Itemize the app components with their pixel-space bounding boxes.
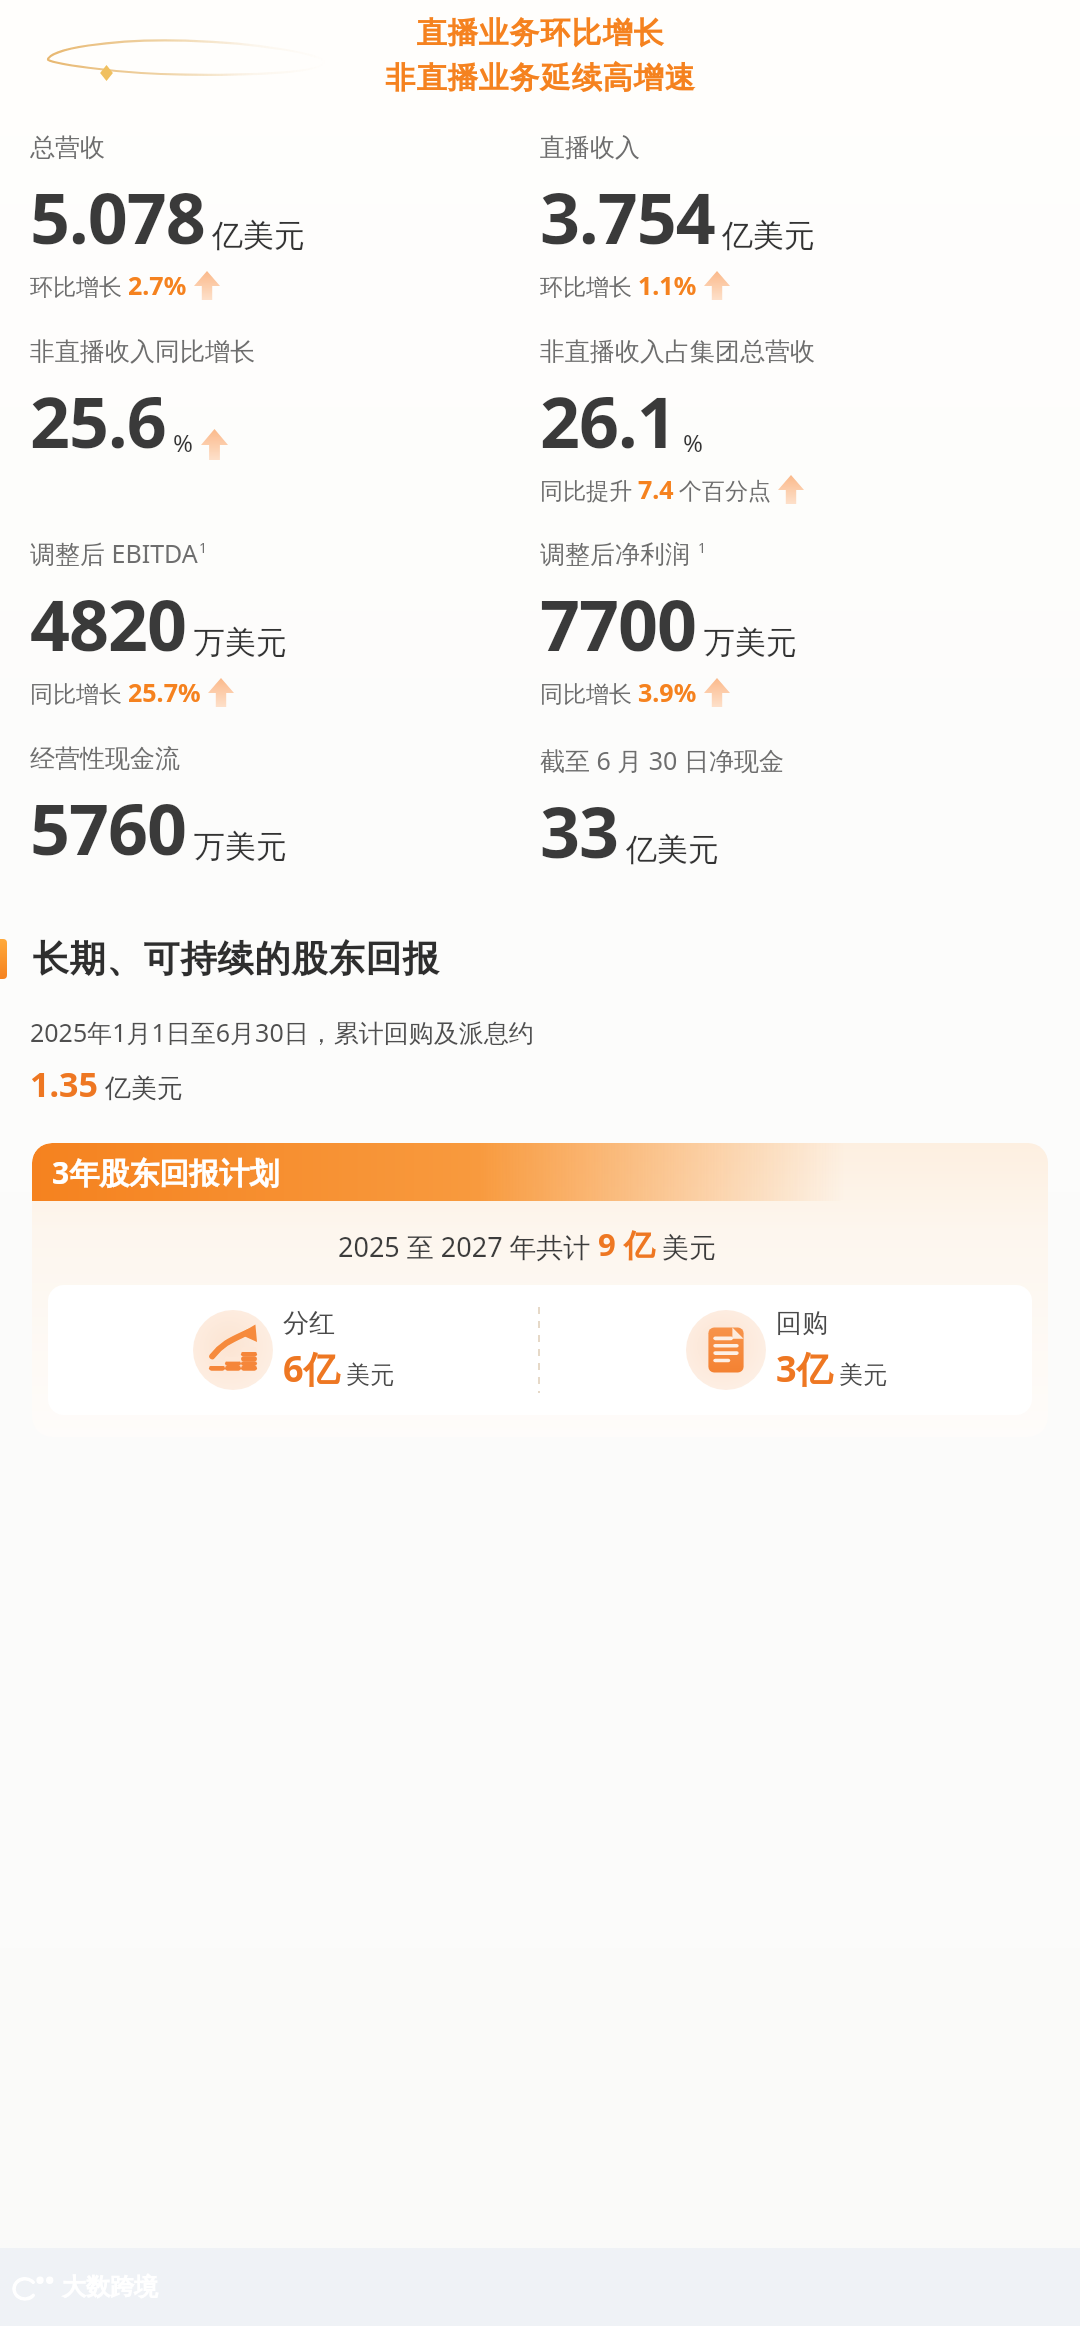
staticText: 经营性现金流 bbox=[30, 743, 180, 774]
staticText: 非直播收入占集团总营收 bbox=[540, 336, 815, 367]
staticText: 3年股东回报计划 bbox=[52, 1152, 280, 1193]
staticText: 5760 bbox=[30, 780, 187, 875]
staticText: 2.7% bbox=[128, 268, 187, 302]
staticText: % bbox=[683, 426, 703, 459]
staticText: 美元 bbox=[346, 1360, 394, 1390]
staticText: 美元 bbox=[655, 1228, 717, 1265]
staticText: 美元 bbox=[839, 1360, 887, 1390]
staticText: 9 亿 bbox=[598, 1223, 655, 1265]
staticText: 2025年1月1日至6月30日，累计回购及派息约 bbox=[30, 1015, 534, 1049]
staticText: 亿美元 bbox=[212, 216, 305, 255]
staticText: 1 bbox=[698, 538, 707, 557]
staticText: 7700 bbox=[540, 576, 697, 671]
staticText: 1 bbox=[199, 538, 208, 557]
staticText: 3.9% bbox=[638, 675, 697, 709]
staticText: 同比提升 bbox=[540, 477, 632, 506]
staticText: 大数跨境 bbox=[62, 2272, 158, 2302]
staticText: 回购 bbox=[776, 1307, 828, 1340]
staticText: 个百分点 bbox=[679, 477, 771, 506]
staticText: 非直播业务延续高增速 bbox=[385, 59, 695, 97]
staticText: 环比增长 bbox=[30, 273, 122, 302]
staticText: 分红 bbox=[283, 1307, 335, 1340]
button[interactable]: 3年股东回报计划 bbox=[32, 1143, 1048, 1437]
staticText: % bbox=[173, 426, 193, 459]
staticText: 长期、可持续的股东回报 bbox=[32, 936, 439, 981]
button[interactable]: 分红 bbox=[193, 1307, 394, 1393]
staticText: 万美元 bbox=[194, 623, 287, 662]
staticText: 调整后 EBITDA bbox=[30, 536, 198, 570]
staticText: 5.078 bbox=[30, 169, 205, 264]
staticText: 1.35 bbox=[30, 1061, 98, 1107]
staticText: 同比增长 bbox=[30, 680, 122, 709]
staticText: 2025 至 2027 年共计 bbox=[338, 1228, 598, 1265]
staticText: 直播收入 bbox=[540, 132, 640, 163]
staticText: 环比增长 bbox=[540, 273, 632, 302]
staticText: 3亿 bbox=[776, 1344, 833, 1393]
staticText: 万美元 bbox=[704, 623, 797, 662]
staticText: 截至 6 月 30 日净现金 bbox=[540, 743, 784, 777]
staticText: 万美元 bbox=[194, 827, 287, 866]
staticText: 26.1 bbox=[540, 373, 676, 468]
staticText: 亿美元 bbox=[722, 216, 815, 255]
staticText: 亿美元 bbox=[626, 830, 719, 869]
staticText: 25.6 bbox=[30, 373, 166, 468]
staticText: 33 bbox=[540, 783, 619, 878]
staticText: 1.1% bbox=[638, 268, 697, 302]
staticText: 3.754 bbox=[540, 169, 715, 264]
staticText: 亿美元 bbox=[105, 1072, 183, 1105]
staticText: 总营收 bbox=[30, 132, 105, 163]
staticText: 同比增长 bbox=[540, 680, 632, 709]
staticText: 4820 bbox=[30, 576, 187, 671]
staticText: 7.4 bbox=[638, 472, 674, 506]
staticText: 调整后净利润 bbox=[540, 536, 697, 570]
staticText: 非直播收入同比增长 bbox=[30, 336, 255, 367]
staticText: 25.7% bbox=[128, 675, 201, 709]
button[interactable]: 回购 bbox=[686, 1307, 887, 1393]
staticText: 直播业务环比增长 bbox=[416, 14, 664, 52]
staticText: 6亿 bbox=[283, 1344, 340, 1393]
